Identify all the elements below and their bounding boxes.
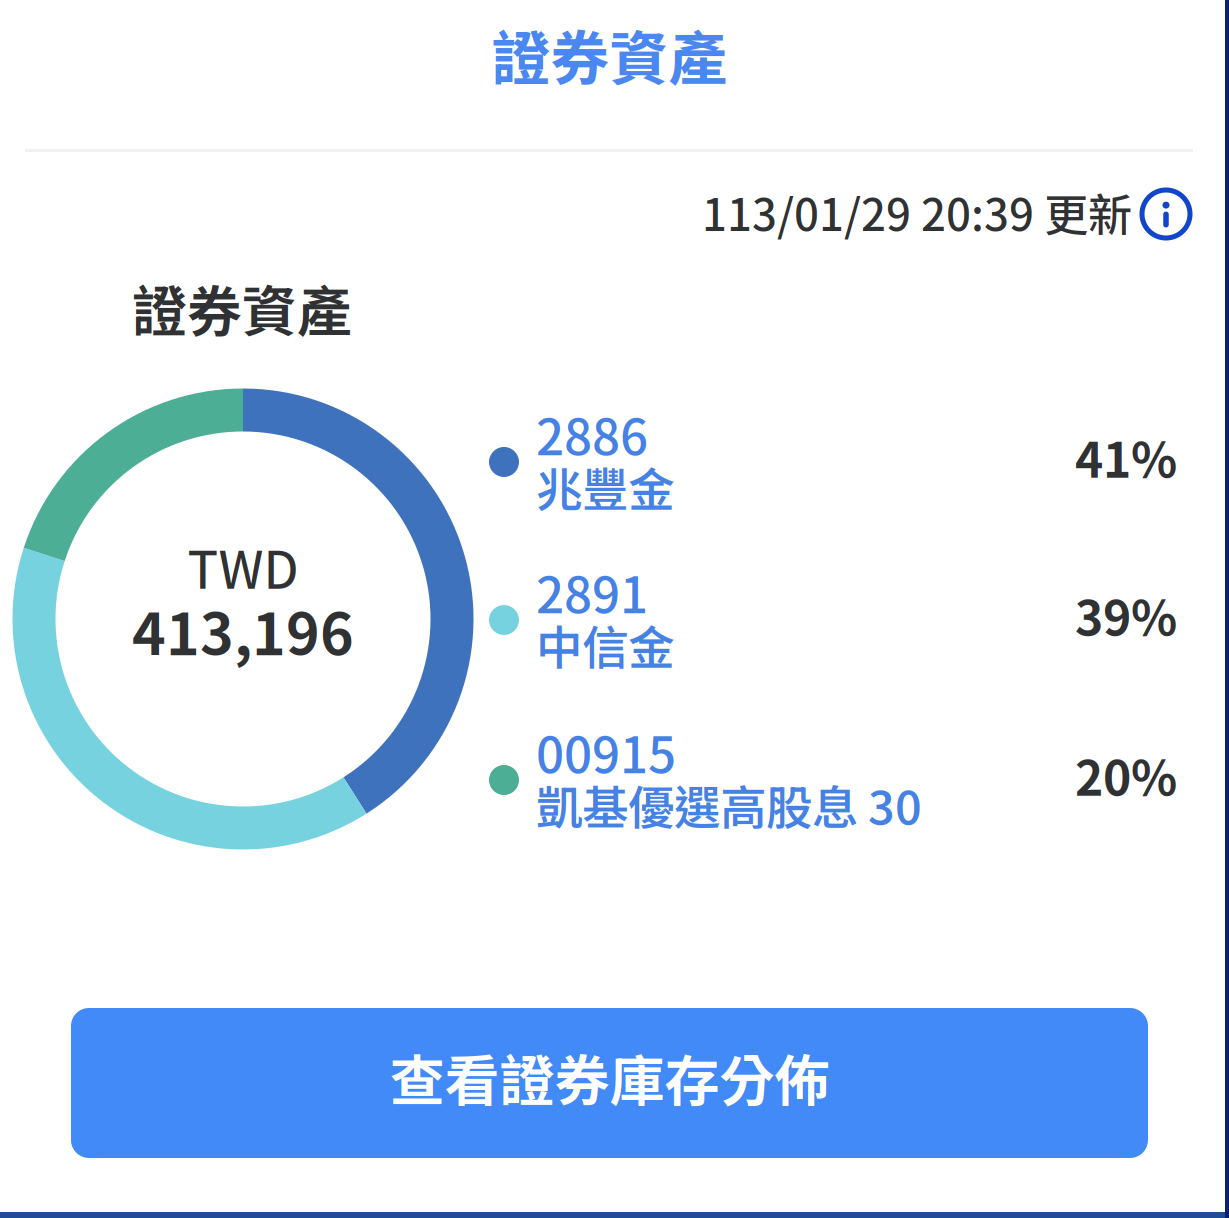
staticText: 2891: [536, 556, 648, 627]
staticText: 39%: [1075, 580, 1177, 649]
staticText: 兆豐金: [536, 453, 674, 520]
staticText: TWD: [187, 530, 298, 603]
button[interactable]: 2891: [477, 546, 1177, 694]
staticText: 查看證券庫存分佈: [389, 1037, 829, 1117]
button[interactable]: 00915: [477, 706, 1177, 854]
staticText: 中信金: [536, 611, 674, 678]
staticText: 證券資產: [132, 268, 352, 347]
staticText: 20%: [1075, 740, 1177, 809]
staticText: 00915: [536, 716, 676, 787]
button[interactable]: 2886: [477, 388, 1177, 536]
staticText: 113/01/29 20:39 更新: [702, 180, 1132, 244]
staticText: 凱基優選高股息 30: [536, 771, 922, 838]
button[interactable]: 查看證券庫存分佈: [71, 1008, 1148, 1158]
staticText: 2886: [536, 398, 648, 469]
staticText: 證券資產: [491, 12, 727, 97]
staticText: 41%: [1075, 422, 1177, 491]
staticText: 413,196: [132, 589, 354, 672]
button[interactable]: Information: [1130, 178, 1202, 250]
